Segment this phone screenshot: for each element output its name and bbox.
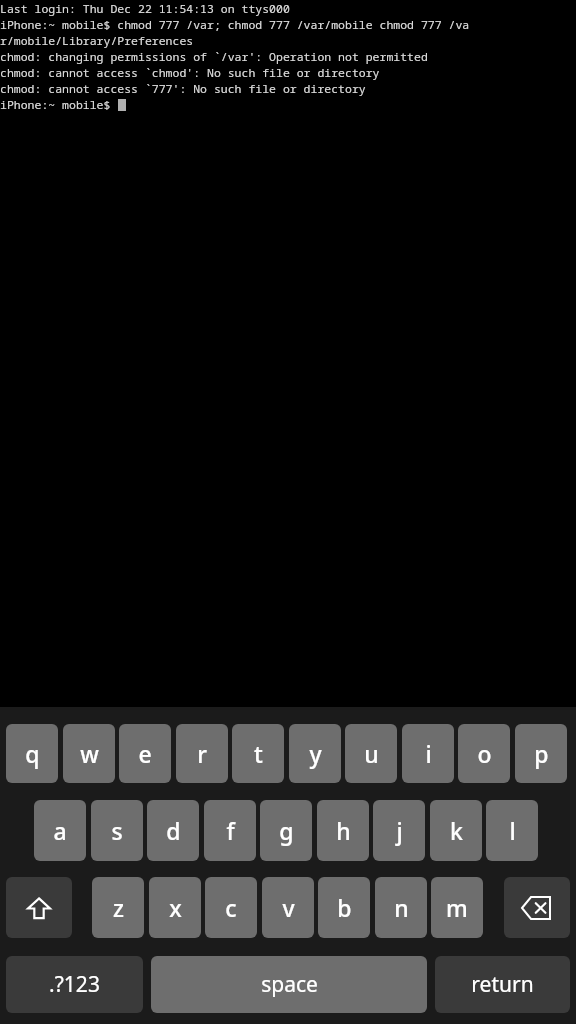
button[interactable]: h [317, 800, 369, 861]
button[interactable]: v [262, 877, 314, 938]
staticText: chmod: cannot access `777': No such file… [0, 81, 366, 97]
button[interactable]: o [458, 724, 510, 783]
button[interactable]: p [515, 724, 567, 783]
staticText: .?123 [49, 970, 100, 999]
staticText: q [25, 738, 40, 769]
button[interactable]: Backspace [504, 877, 570, 938]
staticText: v [282, 892, 295, 923]
staticText: chmod: changing permissions of `/var': O… [0, 49, 428, 65]
button[interactable]: e [119, 724, 171, 783]
staticText: k [450, 815, 463, 846]
button[interactable]: z [92, 877, 144, 938]
button[interactable]: a [34, 800, 86, 861]
button[interactable]: y [289, 724, 341, 783]
staticText: u [364, 738, 379, 769]
staticText: n [394, 892, 409, 923]
staticText: p [534, 738, 549, 769]
staticText: space [261, 970, 318, 999]
staticText: z [113, 892, 124, 923]
staticText: a [53, 815, 67, 846]
button[interactable]: t [232, 724, 284, 783]
button[interactable]: u [345, 724, 397, 783]
button[interactable]: return [435, 956, 570, 1013]
staticText: b [337, 892, 352, 923]
staticText: i [425, 738, 432, 769]
button[interactable]: b [318, 877, 370, 938]
staticText: e [138, 738, 152, 769]
button[interactable]: q [6, 724, 58, 783]
staticText: chmod: cannot access `chmod': No such fi… [0, 65, 380, 81]
staticText: d [166, 815, 181, 846]
button[interactable]: m [431, 877, 483, 938]
staticText: iPhone:~ mobile$ chmod 777 /var; chmod 7… [0, 17, 470, 33]
staticText: f [226, 815, 235, 846]
staticText: g [279, 815, 294, 846]
staticText: x [169, 892, 182, 923]
staticText: j [396, 815, 403, 846]
button[interactable]: k [430, 800, 482, 861]
button[interactable]: j [373, 800, 425, 861]
button[interactable]: c [205, 877, 257, 938]
button[interactable]: l [486, 800, 538, 861]
button[interactable]: r [176, 724, 228, 783]
button[interactable]: s [91, 800, 143, 861]
staticText: s [111, 815, 123, 846]
staticText: t [254, 738, 263, 769]
button[interactable]: f [204, 800, 256, 861]
staticText: l [509, 815, 516, 846]
button[interactable]: space [151, 956, 427, 1013]
button[interactable]: n [375, 877, 427, 938]
staticText: Last login: Thu Dec 22 11:54:13 on ttys0… [0, 1, 290, 17]
staticText: return [471, 970, 534, 999]
staticText: o [477, 738, 492, 769]
button[interactable]: w [63, 724, 115, 783]
staticText: h [336, 815, 351, 846]
staticText: iPhone:~ mobile$ [0, 97, 118, 113]
staticText: r/mobile/Library/Preferences [0, 33, 194, 49]
button[interactable]: g [260, 800, 312, 861]
button[interactable]: d [147, 800, 199, 861]
staticText: m [446, 892, 468, 923]
button[interactable]: x [149, 877, 201, 938]
staticText: y [309, 738, 322, 769]
button[interactable]: .?123 [6, 956, 143, 1013]
staticText: r [197, 738, 207, 769]
staticText: c [225, 892, 237, 923]
staticText: w [80, 738, 99, 769]
button[interactable]: i [402, 724, 454, 783]
button[interactable]: Shift [6, 877, 72, 938]
